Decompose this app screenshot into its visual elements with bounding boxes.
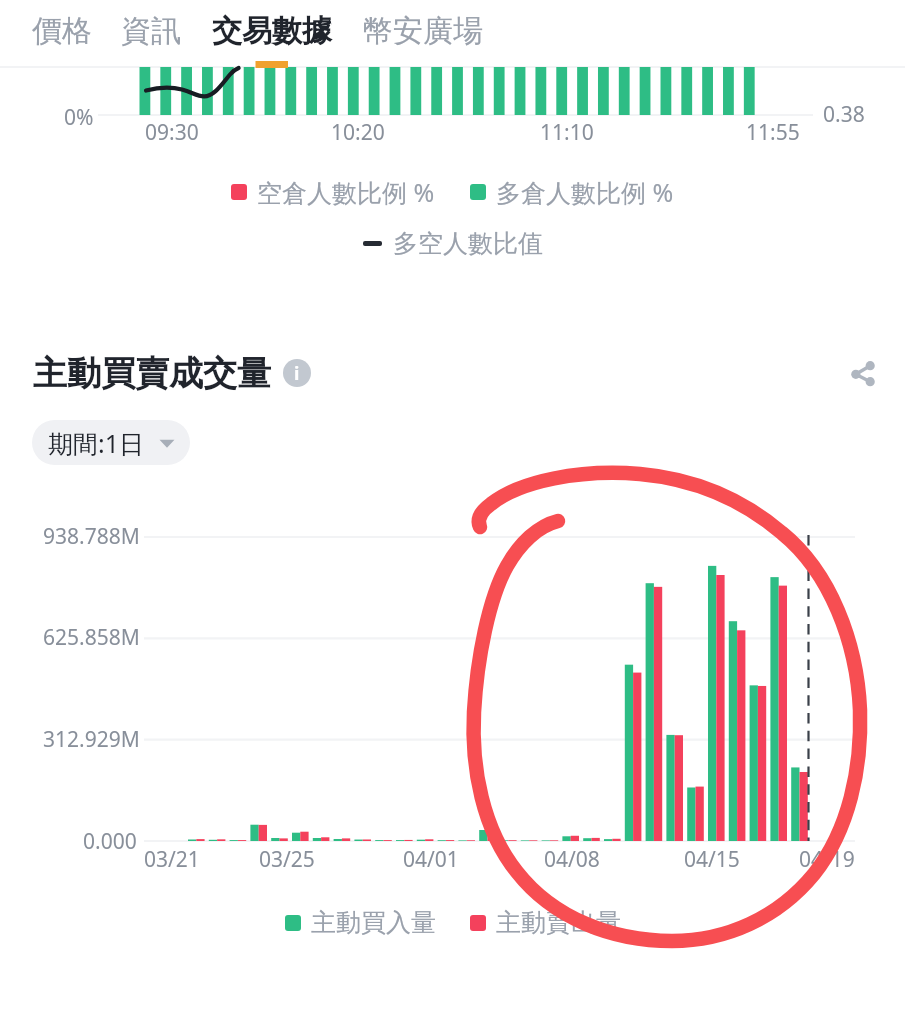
button[interactable]: 交易數據 (212, 12, 332, 50)
staticText: 幣安廣場 (363, 12, 483, 50)
staticText: 04/01 (403, 845, 459, 874)
staticText: 多倉人數比例 % (496, 175, 674, 209)
staticText: i (294, 361, 300, 386)
staticText: 625.858M (43, 623, 140, 652)
staticText: 主動買入量 (311, 907, 436, 938)
staticText: 11:10 (540, 118, 594, 147)
staticText: 交易數據 (212, 12, 332, 50)
staticText: 10:20 (331, 118, 385, 147)
staticText: 期間:1日 (48, 426, 145, 460)
button[interactable]: 資訊 (121, 12, 181, 50)
staticText: 09:30 (145, 118, 199, 147)
staticText: 資訊 (121, 12, 181, 50)
staticText: 04/19 (799, 845, 855, 874)
button[interactable]: 幣安廣場 (363, 12, 483, 50)
staticText: 主動買賣成交量 (33, 352, 271, 395)
staticText: 空倉人數比例 % (257, 175, 435, 209)
staticText: 03/21 (144, 845, 200, 874)
staticText: 312.929M (43, 725, 140, 754)
staticText: 0% (64, 103, 94, 132)
staticText: 0.38 (823, 100, 865, 129)
staticText: 938.788M (43, 522, 140, 551)
button[interactable]: Info (283, 359, 311, 387)
button[interactable]: 期間:1日 (32, 420, 190, 465)
staticText: 主動賣出量 (496, 907, 621, 938)
button[interactable]: Share (844, 352, 886, 394)
staticText: 04/08 (544, 845, 600, 874)
staticText: 11:55 (746, 118, 800, 147)
button[interactable]: 價格 (32, 12, 92, 50)
staticText: 03/25 (259, 845, 315, 874)
staticText: 多空人數比值 (393, 228, 543, 259)
staticText: 04/15 (684, 845, 740, 874)
staticText: 0.000 (83, 827, 137, 856)
staticText: 價格 (32, 12, 92, 50)
